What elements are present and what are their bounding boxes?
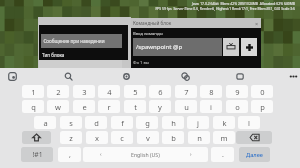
staticText: z — [69, 133, 73, 143]
staticText: 7 — [184, 87, 189, 97]
button[interactable]: 7 — [175, 85, 197, 98]
staticText: p — [260, 102, 265, 112]
staticText: m — [220, 133, 228, 143]
button[interactable]: f — [111, 116, 133, 129]
button[interactable]: m — [213, 131, 235, 144]
button[interactable]: n — [188, 131, 210, 144]
button[interactable]: 6 — [149, 85, 171, 98]
button[interactable]: Backspace — [236, 131, 272, 144]
staticText: q — [31, 102, 36, 112]
button[interactable]: More options — [285, 68, 300, 84]
staticText: d — [94, 118, 99, 128]
staticText: 6 — [158, 87, 163, 97]
button[interactable]: Stickers — [4, 68, 20, 84]
button[interactable]: 9 — [226, 85, 248, 98]
button[interactable]: e — [73, 100, 95, 113]
button[interactable]: 3 — [73, 85, 95, 98]
button[interactable]: 0 — [251, 85, 273, 98]
staticText: w — [55, 102, 61, 112]
button[interactable]: o — [226, 100, 248, 113]
staticText: c — [120, 133, 124, 143]
staticText: 2 — [56, 87, 61, 97]
button[interactable]: Translate — [177, 68, 193, 84]
button[interactable]: h — [162, 116, 184, 129]
button[interactable]: Сообщение при наведении — [41, 34, 122, 48]
staticText: v — [146, 133, 150, 143]
button[interactable]: 1 — [22, 85, 44, 98]
staticText: 3 — [82, 87, 87, 97]
staticText: Ввод команды — [133, 31, 163, 37]
button[interactable]: 8 — [200, 85, 222, 98]
button[interactable]: t — [124, 100, 146, 113]
button[interactable]: 2 — [47, 85, 69, 98]
staticText: t — [134, 102, 137, 112]
staticText: n — [197, 133, 202, 143]
button[interactable]: l — [238, 116, 260, 129]
button[interactable]: p — [251, 100, 273, 113]
staticText: s — [69, 118, 73, 128]
staticText: ‹ — [100, 151, 102, 158]
button[interactable]: z — [60, 131, 82, 144]
staticText: 0 — [260, 87, 265, 97]
staticText: FPS 59 fps Server:Time 0.6, Render:6, Hi… — [0, 6, 295, 11]
button[interactable]: x — [86, 131, 108, 144]
button[interactable]: y — [149, 100, 171, 113]
button[interactable]: Keyboard — [223, 38, 239, 56]
staticText: a — [43, 118, 48, 128]
button[interactable]: 5 — [124, 85, 146, 98]
button[interactable]: a — [34, 116, 56, 129]
button[interactable]: j — [187, 116, 209, 129]
staticText: Тип блока — [42, 52, 65, 58]
button[interactable]: Clipboard — [232, 68, 248, 84]
staticText: /spawnpoint @p — [133, 43, 183, 51]
button[interactable]: c — [111, 131, 133, 144]
button[interactable]: /spawnpoint @p — [133, 38, 222, 56]
button[interactable]: b — [162, 131, 184, 144]
button[interactable]: Search — [60, 68, 76, 84]
button[interactable]: Close — [252, 18, 262, 28]
button[interactable]: , — [58, 147, 81, 162]
staticText: Командный блок — [133, 20, 172, 26]
staticText: j — [197, 118, 199, 128]
button[interactable]: r — [98, 100, 120, 113]
staticText: Далее — [246, 151, 263, 159]
staticText: o — [235, 102, 240, 112]
button[interactable]: Далее — [239, 147, 270, 162]
staticText: r — [107, 102, 111, 112]
staticText: f — [121, 118, 124, 128]
button[interactable]: . — [211, 147, 234, 162]
staticText: × — [255, 20, 259, 27]
button[interactable]: 4 — [98, 85, 120, 98]
staticText: u — [184, 102, 189, 112]
staticText: b — [171, 133, 176, 143]
staticText: h — [171, 118, 176, 128]
staticText: k — [222, 118, 227, 128]
staticText: Фо 1 вы — [133, 60, 150, 66]
staticText: Java: 17.0.2 64bit Mem: 42% 289/1024MB A… — [0, 1, 295, 6]
button[interactable]: u — [175, 100, 197, 113]
button[interactable]: s — [60, 116, 82, 129]
staticText: . — [222, 150, 224, 160]
staticText: y — [158, 102, 162, 112]
staticText: l — [248, 118, 250, 128]
button[interactable]: i — [200, 100, 222, 113]
staticText: English (US) — [131, 151, 160, 158]
button[interactable]: v — [137, 131, 159, 144]
staticText: g — [145, 118, 150, 128]
staticText: › — [190, 151, 192, 158]
staticText: !#1 — [32, 150, 43, 159]
staticText: 4 — [107, 87, 112, 97]
staticText: x — [95, 133, 99, 143]
button[interactable]: English (US) — [83, 147, 208, 162]
staticText: i — [210, 102, 212, 112]
staticText: e — [82, 102, 87, 112]
button[interactable]: !#1 — [21, 147, 53, 162]
button[interactable]: k — [213, 116, 235, 129]
button[interactable]: w — [47, 100, 69, 113]
button[interactable]: g — [136, 116, 158, 129]
button[interactable]: Settings — [118, 68, 134, 84]
button[interactable]: q — [22, 100, 44, 113]
button[interactable]: d — [85, 116, 107, 129]
button[interactable]: Add — [241, 38, 257, 56]
button[interactable]: Shift — [22, 131, 51, 144]
